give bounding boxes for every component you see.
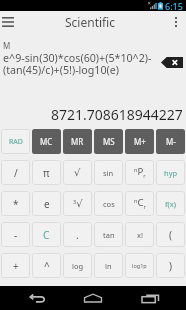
staticText: ln: [105, 261, 112, 271]
staticText: 6:15: [165, 0, 183, 11]
button[interactable]: +: [1, 253, 30, 278]
staticText: 3√: [73, 198, 83, 210]
button[interactable]: (: [156, 222, 185, 247]
button[interactable]: e: [32, 191, 61, 216]
staticText: M+: [134, 136, 146, 147]
button[interactable]: cos: [94, 191, 123, 216]
staticText: log1p: [132, 262, 147, 269]
button[interactable]: MS: [94, 129, 123, 154]
staticText: M-: [166, 136, 176, 147]
button[interactable]: 3√: [63, 191, 92, 216]
staticText: cos: [103, 199, 115, 209]
button[interactable]: RAD: [1, 129, 30, 154]
button[interactable]: log1p: [125, 253, 154, 278]
staticText: ^: [44, 259, 50, 273]
staticText: sin: [103, 168, 114, 178]
staticText: e^9-sin(30)*cos(60)+(5*10^2)- (tan(45)/c…: [3, 51, 152, 77]
staticText: (: [169, 228, 172, 242]
button[interactable]: nCr: [125, 191, 154, 216]
button[interactable]: -: [1, 222, 30, 247]
button[interactable]: f(x): [156, 191, 185, 216]
button[interactable]: Back: [17, 286, 57, 310]
button[interactable]: MC: [32, 129, 61, 154]
button[interactable]: More options: [166, 11, 186, 33]
staticText: ): [169, 259, 172, 273]
staticText: -: [14, 228, 18, 242]
staticText: x!: [137, 230, 143, 240]
staticText: *: [13, 197, 19, 211]
staticText: nCr: [134, 196, 146, 211]
button[interactable]: Recent apps: [130, 286, 170, 310]
staticText: MS: [103, 136, 115, 147]
button[interactable]: π: [32, 160, 61, 185]
button[interactable]: Navigation drawer: [2, 11, 14, 33]
button[interactable]: √: [63, 160, 92, 185]
staticText: π: [43, 166, 50, 180]
staticText: 8721.708618944227: [51, 105, 183, 124]
button[interactable]: x!: [125, 222, 154, 247]
button[interactable]: M+: [125, 129, 154, 154]
staticText: e: [44, 197, 50, 211]
button[interactable]: log: [63, 253, 92, 278]
button[interactable]: ): [156, 253, 185, 278]
button[interactable]: Home: [73, 286, 113, 310]
staticText: +: [13, 259, 19, 273]
staticText: hyp: [164, 168, 178, 178]
staticText: nPr: [134, 165, 146, 180]
staticText: /: [14, 166, 18, 180]
button[interactable]: Backspace: [161, 57, 183, 68]
staticText: MR: [71, 136, 84, 147]
button[interactable]: M-: [156, 129, 185, 154]
staticText: f(x): [165, 199, 177, 209]
button[interactable]: ln: [94, 253, 123, 278]
button[interactable]: /: [1, 160, 30, 185]
staticText: MC: [40, 136, 53, 147]
staticText: log: [72, 261, 84, 271]
button[interactable]: MR: [63, 129, 92, 154]
staticText: .: [76, 228, 79, 242]
staticText: √: [74, 167, 81, 179]
staticText: tan: [103, 230, 115, 240]
staticText: Scientific: [65, 14, 116, 30]
staticText: RAD: [9, 137, 23, 147]
staticText: M: [3, 40, 11, 51]
button[interactable]: tan: [94, 222, 123, 247]
staticText: C: [43, 228, 50, 242]
button[interactable]: sin: [94, 160, 123, 185]
button[interactable]: C: [32, 222, 61, 247]
button[interactable]: ^: [32, 253, 61, 278]
button[interactable]: hyp: [156, 160, 185, 185]
button[interactable]: *: [1, 191, 30, 216]
button[interactable]: .: [63, 222, 92, 247]
button[interactable]: nPr: [125, 160, 154, 185]
